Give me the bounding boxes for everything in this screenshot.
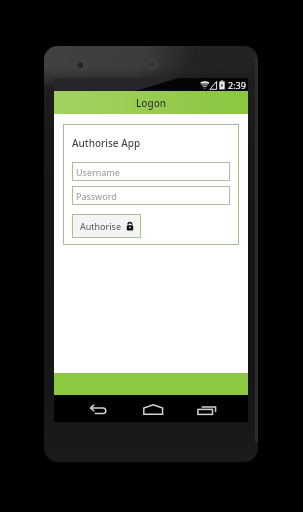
button[interactable]: Home (140, 397, 166, 421)
staticText: Password (76, 190, 117, 202)
staticText: Username (76, 166, 120, 178)
button[interactable]: Authorise (72, 214, 141, 238)
staticText: Logon (136, 96, 167, 110)
staticText: Authorise (80, 220, 121, 232)
button[interactable]: Back (85, 397, 111, 421)
button[interactable]: Recents (194, 397, 220, 421)
button[interactable]: Username (72, 162, 230, 181)
button[interactable]: Password (72, 186, 230, 205)
staticText: Authorise App (72, 136, 141, 150)
staticText: 2:39 (228, 79, 246, 91)
